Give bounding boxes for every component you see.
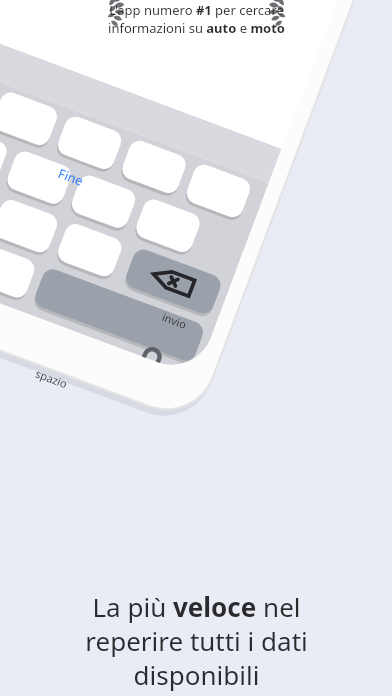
staticText: La più veloce nel reperire tutti i dati … <box>85 589 308 692</box>
staticText: spazio <box>33 366 70 391</box>
staticText: invio <box>160 309 189 332</box>
other: Fine <box>56 164 86 190</box>
staticText: L'app numero #1 per cercare informazioni… <box>108 1 285 37</box>
staticText: Fine <box>56 164 86 190</box>
